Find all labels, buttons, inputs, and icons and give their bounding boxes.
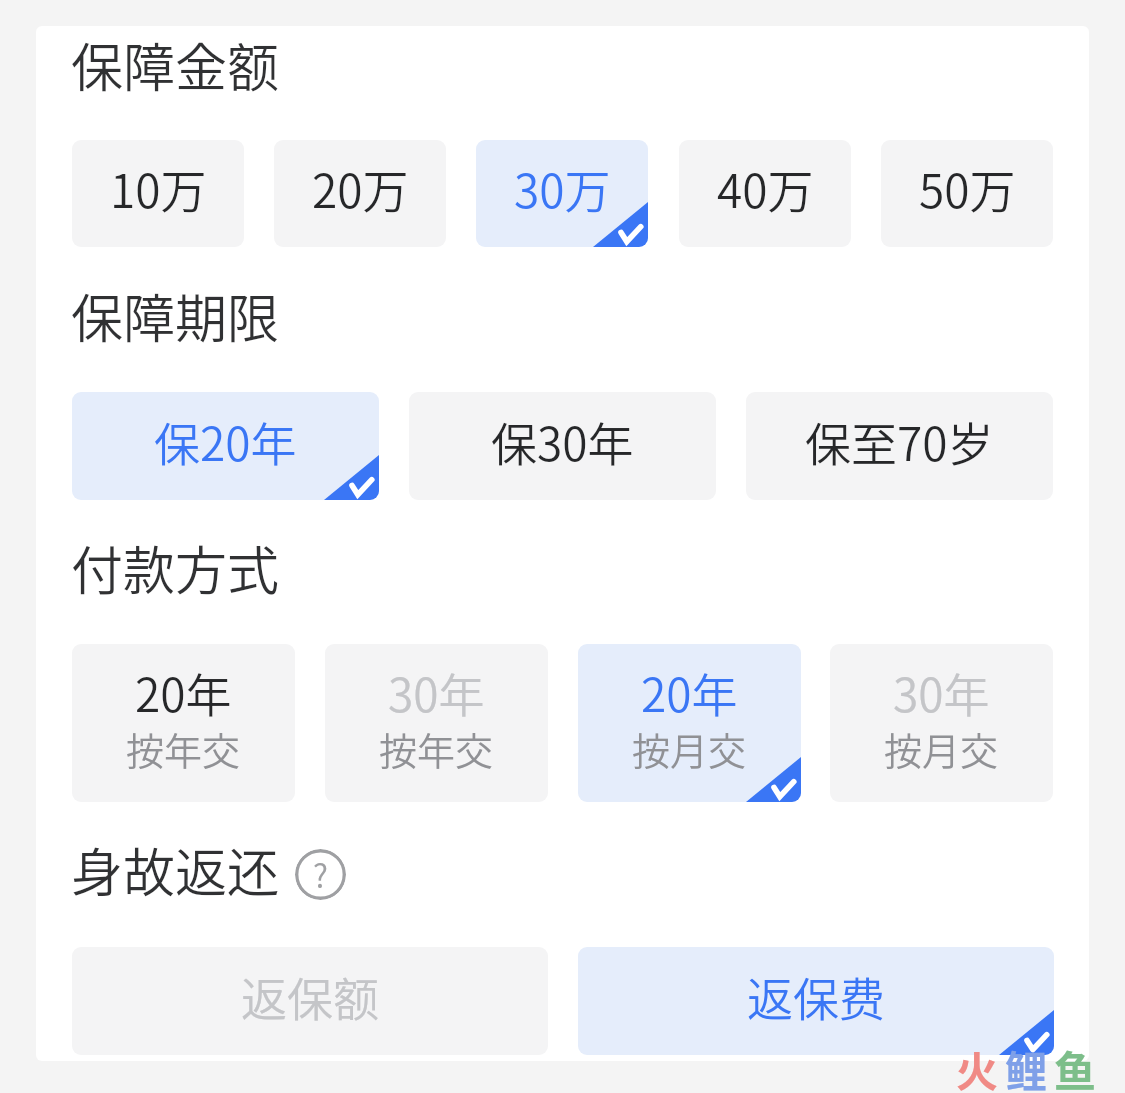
staticText: 30年 <box>388 659 485 726</box>
button[interactable]: 保20年 <box>72 392 379 500</box>
button[interactable]: Help <box>295 849 346 900</box>
button[interactable]: 20年 <box>578 644 801 802</box>
button[interactable]: 10万 <box>72 140 244 247</box>
staticText: 10万 <box>110 155 207 222</box>
staticText: 30万 <box>514 155 611 222</box>
staticText: 返保费 <box>747 963 885 1030</box>
button[interactable]: 保30年 <box>409 392 716 500</box>
staticText: 30年 <box>893 659 990 726</box>
staticText: 保至70岁 <box>805 408 994 475</box>
staticText: 火 <box>956 1038 999 1093</box>
staticText: 按年交 <box>126 721 241 776</box>
staticText: 50万 <box>919 155 1016 222</box>
button[interactable]: 保至70岁 <box>746 392 1053 500</box>
staticText: 身故返还 <box>71 832 280 907</box>
staticText: 鲤 <box>1005 1038 1048 1093</box>
button[interactable]: 40万 <box>679 140 851 247</box>
staticText: 返保额 <box>241 963 379 1030</box>
button[interactable]: 30年 <box>325 644 548 802</box>
staticText: 保障期限 <box>71 278 280 353</box>
staticText: ? <box>313 851 328 897</box>
staticText: 20年 <box>641 659 738 726</box>
staticText: 20年 <box>135 659 232 726</box>
staticText: 40万 <box>717 155 814 222</box>
staticText: 付款方式 <box>71 530 280 605</box>
button[interactable]: 返保费 <box>578 947 1054 1055</box>
button[interactable]: 20年 <box>72 644 295 802</box>
button[interactable]: 30年 <box>830 644 1053 802</box>
staticText: 按年交 <box>379 721 494 776</box>
staticText: 鱼 <box>1054 1038 1097 1093</box>
button[interactable]: 30万 <box>476 140 648 247</box>
staticText: 保障金额 <box>71 27 280 102</box>
staticText: 按月交 <box>884 721 999 776</box>
staticText: 保20年 <box>154 408 297 475</box>
button[interactable]: 50万 <box>881 140 1053 247</box>
staticText: 20万 <box>312 155 409 222</box>
button[interactable]: 20万 <box>274 140 446 247</box>
staticText: 按月交 <box>632 721 747 776</box>
button[interactable]: 返保额 <box>72 947 548 1055</box>
staticText: 保30年 <box>491 408 634 475</box>
